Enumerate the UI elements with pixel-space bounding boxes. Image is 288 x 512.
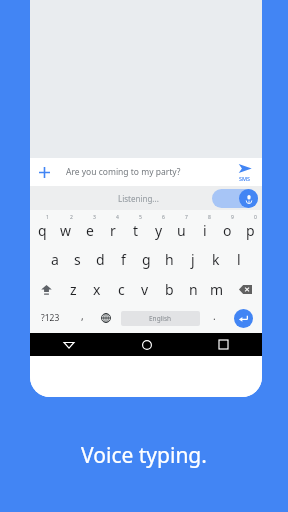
button[interactable]: k: [204, 244, 227, 274]
button[interactable]: a: [43, 244, 66, 274]
staticText: z: [70, 280, 77, 299]
staticText: r: [110, 221, 116, 240]
staticText: English: [149, 314, 172, 323]
staticText: 3: [93, 214, 96, 221]
staticText: 9: [231, 214, 234, 221]
staticText: 1: [46, 214, 49, 221]
staticText: g: [142, 250, 151, 269]
button[interactable]: Voice input: [239, 189, 258, 208]
button[interactable]: Change language: [93, 304, 118, 332]
staticText: 4: [116, 214, 119, 221]
staticText: Listening...: [118, 193, 159, 204]
staticText: f: [121, 250, 126, 269]
staticText: Voice typing.: [0, 441, 288, 470]
button[interactable]: 5: [124, 213, 147, 244]
button[interactable]: 9: [216, 213, 239, 244]
button[interactable]: s: [66, 244, 89, 274]
button[interactable]: b: [157, 274, 181, 304]
staticText: j: [191, 250, 195, 269]
button[interactable]: 2: [54, 213, 78, 244]
button[interactable]: d: [89, 244, 112, 274]
staticText: ?123: [41, 312, 60, 324]
button[interactable]: j: [181, 244, 204, 274]
button[interactable]: English: [121, 311, 200, 326]
staticText: 0: [254, 214, 257, 221]
button[interactable]: v: [133, 274, 157, 304]
staticText: a: [51, 250, 59, 269]
button[interactable]: n: [181, 274, 205, 304]
staticText: q: [38, 221, 47, 240]
button[interactable]: g: [135, 244, 158, 274]
staticText: w: [60, 221, 72, 240]
staticText: 8: [208, 214, 211, 221]
button[interactable]: .: [203, 304, 225, 332]
staticText: t: [133, 221, 139, 240]
staticText: u: [177, 221, 186, 240]
staticText: b: [165, 280, 174, 299]
button[interactable]: Add attachment: [30, 158, 262, 186]
button[interactable]: ,: [71, 304, 93, 332]
staticText: n: [189, 280, 198, 299]
button[interactable]: 6: [147, 213, 170, 244]
button[interactable]: Back: [30, 333, 108, 356]
button[interactable]: x: [85, 274, 109, 304]
button[interactable]: l: [227, 244, 250, 274]
staticText: i: [203, 221, 207, 240]
staticText: .: [213, 309, 216, 323]
staticText: h: [165, 250, 174, 269]
button[interactable]: Recent apps: [185, 333, 262, 356]
button[interactable]: f: [112, 244, 135, 274]
button[interactable]: Send SMS: [228, 158, 262, 186]
staticText: e: [86, 221, 94, 240]
button[interactable]: 8: [193, 213, 216, 244]
staticText: k: [212, 250, 220, 269]
button[interactable]: h: [158, 244, 181, 274]
staticText: 6: [162, 214, 165, 221]
button[interactable]: 4: [101, 213, 124, 244]
button[interactable]: 0: [239, 213, 262, 244]
staticText: x: [93, 280, 101, 299]
button[interactable]: Home: [108, 333, 185, 356]
staticText: d: [96, 250, 105, 269]
staticText: m: [210, 280, 224, 299]
button[interactable]: z: [62, 274, 85, 304]
staticText: c: [118, 280, 125, 299]
button[interactable]: Shift: [30, 274, 62, 304]
staticText: 5: [139, 214, 142, 221]
staticText: Are you coming to my party?: [66, 166, 228, 178]
staticText: s: [74, 250, 81, 269]
button[interactable]: 7: [170, 213, 193, 244]
staticText: y: [155, 221, 163, 240]
button[interactable]: m: [205, 274, 229, 304]
staticText: p: [246, 221, 255, 240]
staticText: SMS: [239, 175, 251, 182]
staticText: o: [223, 221, 232, 240]
button[interactable]: Backspace: [229, 274, 262, 304]
button[interactable]: Enter: [234, 309, 253, 328]
button[interactable]: Add attachment: [30, 158, 58, 186]
staticText: 7: [185, 214, 188, 221]
button[interactable]: ?123: [30, 304, 71, 332]
staticText: l: [237, 250, 241, 269]
staticText: ,: [81, 309, 84, 323]
button[interactable]: 3: [78, 213, 101, 244]
staticText: 2: [70, 214, 73, 221]
staticText: v: [141, 280, 149, 299]
button[interactable]: c: [109, 274, 133, 304]
button[interactable]: 1: [30, 213, 54, 244]
